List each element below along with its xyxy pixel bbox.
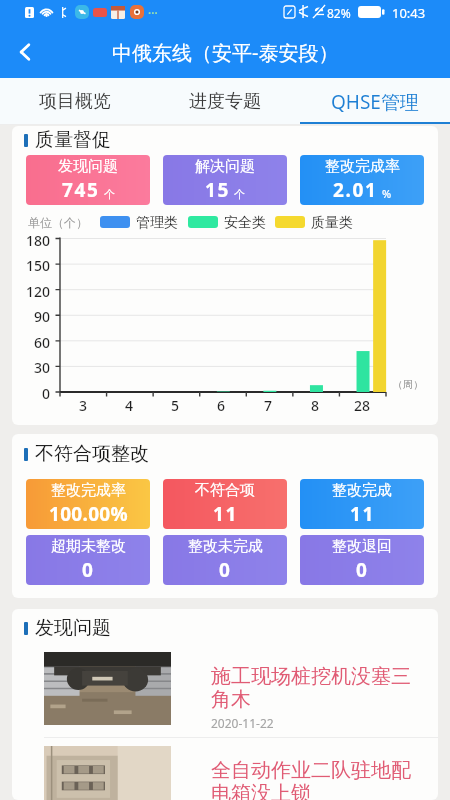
staticText: 180 [26, 231, 51, 247]
button[interactable]: 整改退回 [300, 535, 424, 585]
staticText: % [382, 186, 392, 201]
staticText: 不符合项整改 [35, 442, 149, 466]
staticText: ··· [148, 5, 158, 21]
staticText: 发现问题 [35, 616, 111, 640]
staticText: 6 [217, 396, 226, 412]
button[interactable]: Back [4, 31, 46, 73]
button[interactable]: QHSE管理 [300, 78, 450, 125]
staticText: 150 [26, 256, 51, 272]
staticText: 15 [205, 177, 230, 203]
staticText: 整改完成 [332, 481, 392, 500]
button[interactable]: 超期未整改 [26, 535, 150, 585]
staticText: 进度专题 [189, 90, 261, 113]
button[interactable]: 发现问题 [26, 155, 150, 205]
button[interactable]: 整改完成率 [26, 479, 150, 529]
button[interactable]: 不符合项 [163, 479, 287, 529]
staticText: 整改完成率 [51, 481, 126, 500]
staticText: 100.00% [49, 501, 128, 527]
staticText: 8 [311, 396, 320, 412]
button[interactable]: 整改未完成 [163, 535, 287, 585]
button[interactable]: 项目概览 [0, 78, 150, 125]
staticText: 项目概览 [39, 90, 111, 113]
staticText: 施工现场桩挖机没塞三 角木 [211, 664, 411, 712]
staticText: 管理类 [136, 214, 178, 230]
staticText: 11 [350, 501, 375, 527]
staticText: 120 [26, 282, 51, 298]
staticText: 质量督促 [35, 128, 111, 152]
staticText: 745 [62, 177, 100, 203]
staticText: 28 [354, 396, 371, 412]
button[interactable]: 解决问题 [163, 155, 287, 205]
staticText: 7 [264, 396, 273, 412]
button[interactable]: 进度专题 [150, 78, 300, 125]
button[interactable]: 整改完成 [300, 479, 424, 529]
staticText: 单位（个） [28, 215, 88, 230]
staticText: 2.01 [333, 177, 378, 203]
staticText: 82% [327, 5, 351, 21]
staticText: 质量类 [311, 214, 353, 230]
staticText: 5 [171, 396, 180, 412]
staticText: 0 [82, 557, 95, 583]
staticText: 2020-11-22 [211, 715, 274, 731]
staticText: 0 [219, 557, 232, 583]
staticText: 30 [34, 358, 51, 374]
staticText: 60 [34, 333, 51, 349]
staticText: 个 [234, 187, 245, 201]
staticText: 整改未完成 [188, 537, 263, 556]
staticText: 3 [79, 396, 88, 412]
staticText: 11 [213, 501, 238, 527]
staticText: （周） [393, 378, 423, 391]
staticText: 0 [42, 384, 51, 400]
staticText: 中俄东线（安平-泰安段） [112, 39, 339, 66]
button[interactable]: 施工现场桩挖机没塞三 角木 [44, 652, 430, 731]
staticText: 超期未整改 [51, 537, 126, 556]
button[interactable]: 全自动作业二队驻地配 电箱没上锁 [44, 746, 430, 800]
staticText: 不符合项 [195, 481, 255, 500]
staticText: 发现问题 [58, 157, 118, 176]
staticText: 10:43 [392, 4, 426, 22]
staticText: 安全类 [224, 214, 266, 230]
staticText: 0 [356, 557, 369, 583]
staticText: 解决问题 [195, 157, 255, 176]
button[interactable]: 整改完成率 [300, 155, 424, 205]
staticText: 全自动作业二队驻地配 电箱没上锁 [211, 758, 411, 800]
staticText: 整改退回 [332, 537, 392, 556]
staticText: 4 [125, 396, 134, 412]
staticText: 个 [104, 187, 115, 201]
staticText: 90 [34, 307, 51, 323]
staticText: QHSE管理 [331, 89, 419, 115]
staticText: 整改完成率 [325, 157, 400, 176]
